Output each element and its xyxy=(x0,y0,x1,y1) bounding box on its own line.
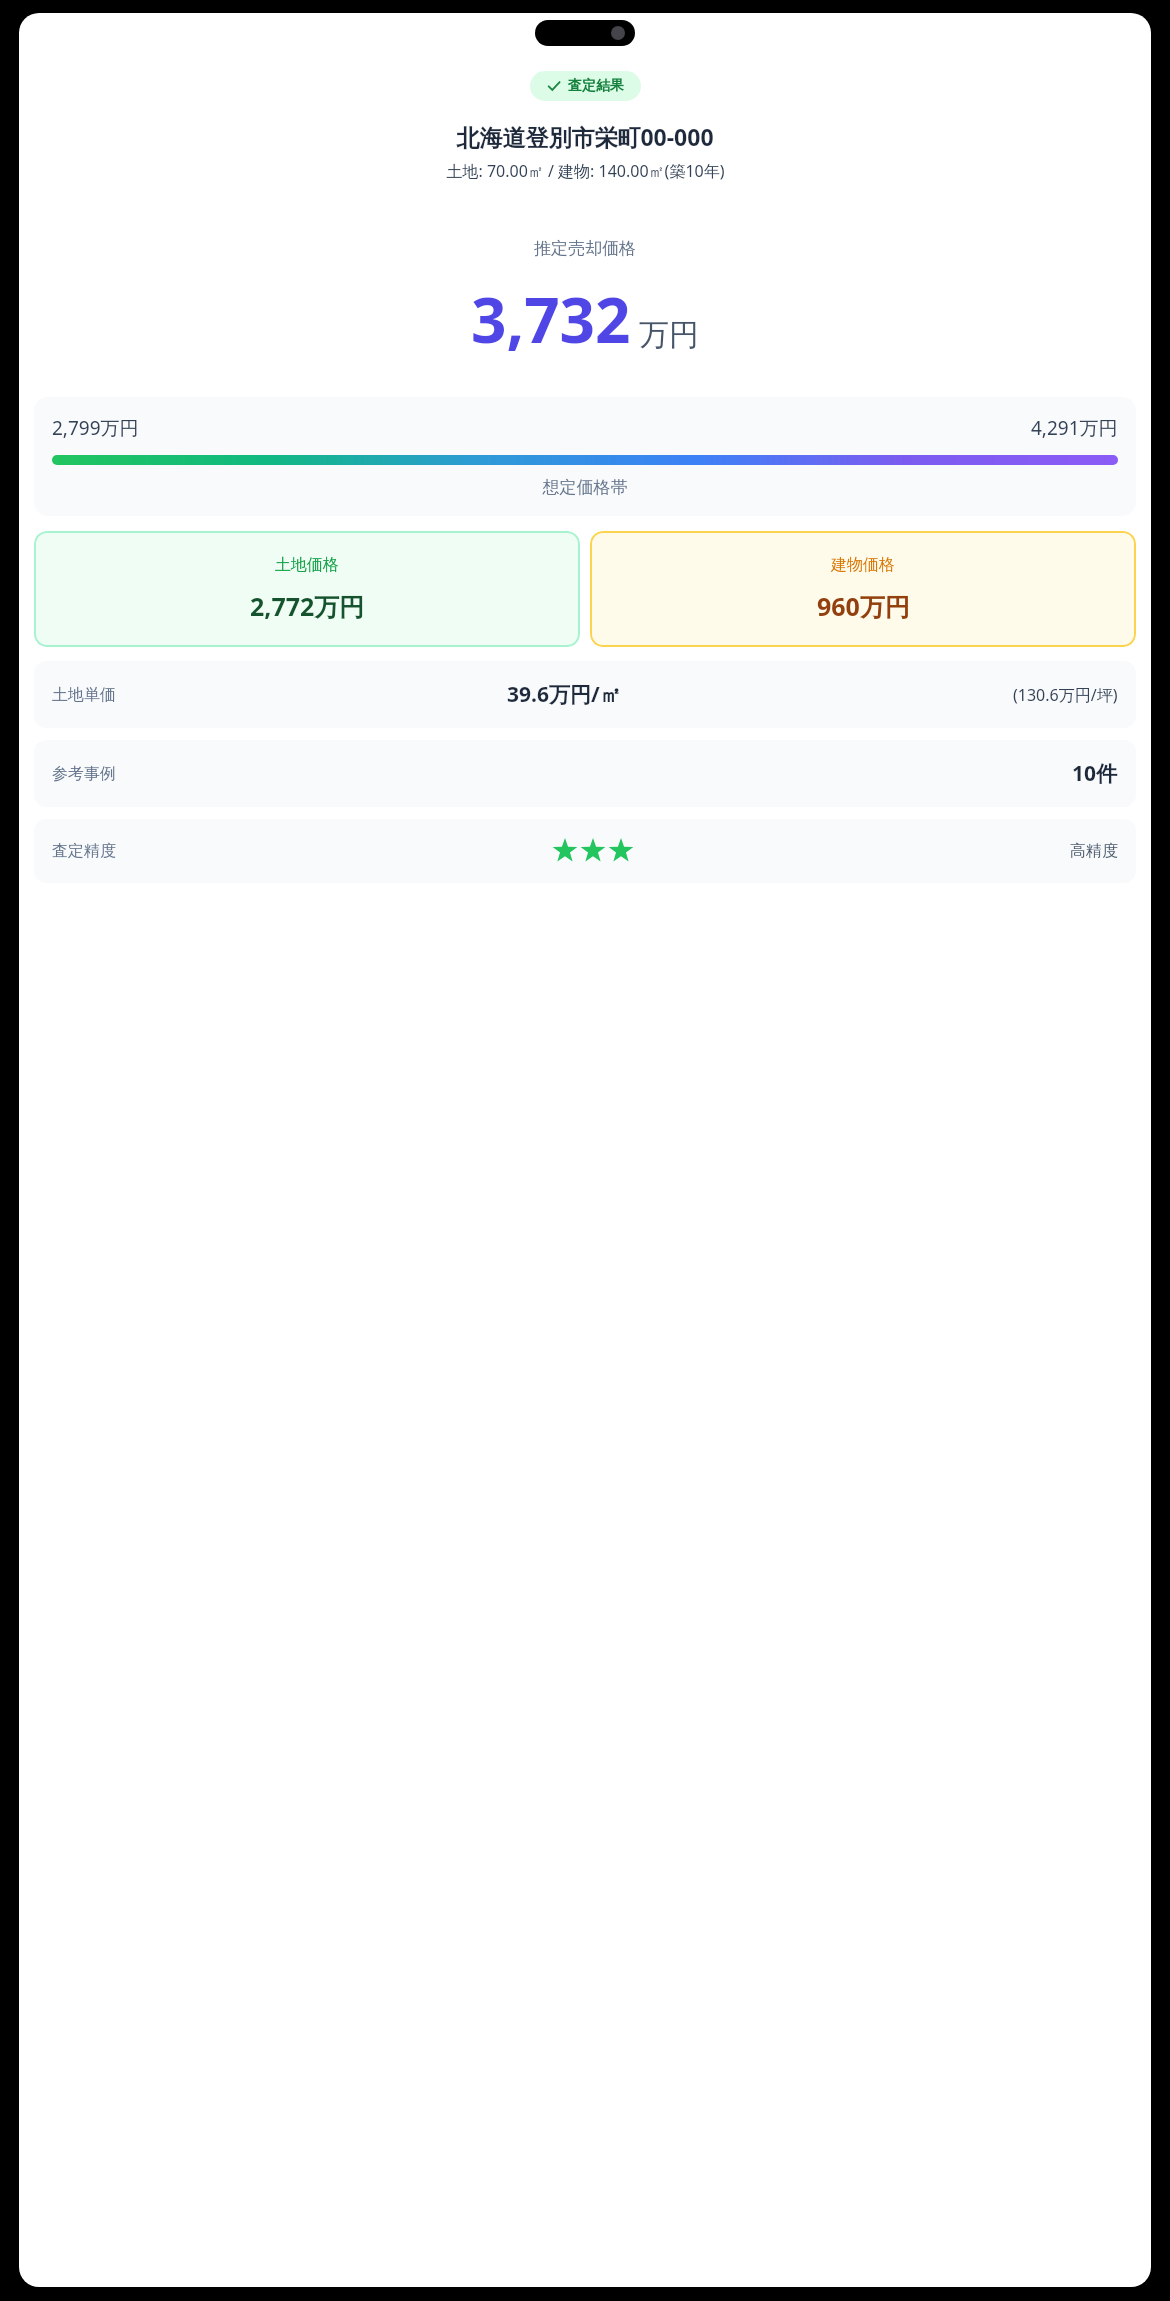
button[interactable]: 土地価格 xyxy=(34,531,580,647)
staticText: 高精度 xyxy=(1070,841,1118,861)
staticText: 4,291万円 xyxy=(1031,415,1118,441)
staticText: 万円 xyxy=(639,316,699,354)
staticText: 土地価格 xyxy=(275,555,339,575)
staticText: 2,772万円 xyxy=(250,589,365,623)
button[interactable]: 建物価格 xyxy=(590,531,1136,647)
other: 精度 3つ星 xyxy=(552,838,634,864)
button[interactable]: 土地単価 xyxy=(34,661,1136,728)
button[interactable]: 査定結果 xyxy=(530,71,641,101)
staticText: 査定精度 xyxy=(52,841,116,861)
staticText: 960万円 xyxy=(817,589,910,623)
staticText: 2,799万円 xyxy=(52,415,139,441)
staticText: 想定価格帯 xyxy=(52,477,1118,498)
staticText: 土地単価 xyxy=(52,685,116,705)
staticText: 参考事例 xyxy=(52,764,116,784)
staticText: 土地: 70.00㎡ / 建物: 140.00㎡(築10年) xyxy=(446,160,725,182)
staticText: 3,732 xyxy=(471,277,631,361)
staticText: 査定結果 xyxy=(568,77,624,95)
button[interactable]: 査定精度 xyxy=(34,819,1136,883)
staticText: 39.6万円/㎡ xyxy=(507,680,621,709)
staticText: 推定売却価格 xyxy=(534,238,636,259)
button[interactable]: 参考事例 xyxy=(34,740,1136,807)
staticText: 建物価格 xyxy=(831,555,895,575)
button[interactable]: 2,799万円 xyxy=(34,397,1136,516)
staticText: 10件 xyxy=(1072,759,1118,788)
staticText: (130.6万円/坪) xyxy=(1013,684,1118,706)
staticText: 北海道登別市栄町00-000 xyxy=(456,121,714,152)
